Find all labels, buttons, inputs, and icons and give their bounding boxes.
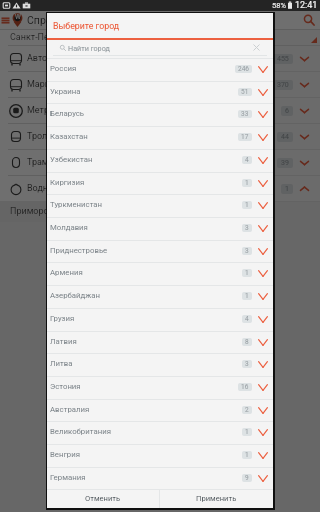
staticText: Маршрутка — [27, 79, 47, 90]
staticText: 44 — [281, 133, 289, 141]
staticText: Приднестровье — [50, 246, 108, 255]
staticText: Грузия — [50, 314, 75, 323]
staticText: Отменить — [85, 494, 121, 503]
staticText: Литва — [50, 359, 73, 368]
staticText: 1 — [245, 451, 249, 459]
button[interactable]: Отменить — [47, 490, 159, 508]
staticText: Узбекистан — [50, 155, 93, 164]
staticText: W — [15, 13, 21, 21]
staticText: 1 — [245, 201, 249, 209]
button[interactable]: 1 — [47, 176, 320, 201]
staticText: Казахстан — [50, 132, 88, 141]
staticText: 58% — [272, 1, 286, 10]
staticText: 1 — [245, 269, 249, 277]
button[interactable]: Водный — [0, 176, 47, 201]
button[interactable]: Великобритания — [47, 421, 273, 444]
button[interactable]: Маршрутка — [0, 72, 47, 97]
staticText: 370 — [277, 81, 289, 89]
button[interactable]: Туркменистан — [47, 194, 273, 217]
button[interactable]: Поиск — [303, 14, 315, 26]
staticText: 2 — [245, 406, 249, 414]
staticText: Украина — [50, 87, 81, 96]
staticText: Туркменистан — [50, 200, 103, 209]
staticText: 1 — [245, 292, 249, 300]
staticText: 33 — [241, 110, 249, 118]
button[interactable]: Венгрия — [47, 444, 273, 467]
button[interactable]: Киргизия — [47, 172, 273, 195]
button[interactable]: Молдавия — [47, 217, 273, 240]
button[interactable]: Беларусь — [47, 103, 273, 126]
button[interactable]: Автобус — [0, 46, 47, 71]
button[interactable]: 370 — [47, 72, 320, 97]
staticText: 8 — [245, 338, 249, 346]
staticText: 39 — [281, 159, 289, 167]
button[interactable]: Россия — [47, 58, 273, 81]
staticText: Выберите город — [53, 21, 120, 31]
button[interactable]: Очистить — [253, 44, 260, 51]
staticText: 246 — [238, 65, 249, 73]
button[interactable]: Литва — [47, 353, 273, 376]
staticText: Венгрия — [50, 450, 80, 459]
staticText: 4 — [245, 156, 249, 164]
staticText: Водный — [27, 183, 47, 194]
staticText: 16 — [241, 383, 249, 391]
staticText: Армения — [50, 268, 83, 277]
staticText: Россия — [50, 64, 77, 73]
staticText: Приморская — [10, 206, 47, 217]
button[interactable]: Троллейбус — [0, 124, 47, 149]
button[interactable]: 44 — [47, 124, 320, 149]
staticText: Австралия — [50, 405, 90, 414]
button[interactable]: Германия — [47, 467, 273, 490]
staticText: 1 — [245, 428, 249, 436]
button[interactable]: Приднестровье — [47, 240, 273, 263]
staticText: 4 — [245, 315, 249, 323]
button[interactable]: Латвия — [47, 331, 273, 354]
staticText: 3 — [245, 360, 249, 368]
staticText: 3 — [245, 224, 249, 232]
staticText: Латвия — [50, 337, 77, 346]
button[interactable]: Узбекистан — [47, 149, 273, 172]
staticText: 12:41 — [295, 0, 318, 11]
staticText: 1 — [245, 179, 249, 187]
staticText: Азербайджан — [50, 291, 101, 300]
staticText: Беларусь — [50, 109, 85, 118]
staticText: Великобритания — [50, 427, 111, 436]
staticText: Эстония — [50, 382, 81, 391]
button[interactable]: Трамвай — [0, 150, 47, 175]
button[interactable]: 455 — [47, 46, 320, 71]
staticText: Молдавия — [50, 223, 88, 232]
staticText: 51 — [241, 88, 249, 96]
staticText: Трамвай — [27, 157, 47, 168]
button[interactable]: Грузия — [47, 308, 273, 331]
staticText: Найти город — [68, 44, 110, 52]
staticText: Применить — [196, 494, 237, 503]
staticText: Справочник — [27, 14, 87, 26]
staticText: 17 — [241, 133, 249, 141]
staticText: Киргизия — [50, 178, 85, 187]
staticText: Троллейбус — [27, 131, 47, 142]
button[interactable]: Армения — [47, 262, 273, 285]
button[interactable]: Украина — [47, 81, 273, 104]
staticText: 6 — [285, 107, 289, 115]
staticText: 455 — [277, 55, 289, 63]
button[interactable]: Метро — [0, 98, 47, 123]
button[interactable]: 39 — [47, 150, 320, 175]
button[interactable]: 6 — [47, 98, 320, 123]
button[interactable]: Применить — [160, 490, 273, 508]
button[interactable]: Австралия — [47, 399, 273, 422]
staticText: 9 — [245, 474, 249, 482]
button[interactable]: Эстония — [47, 376, 273, 399]
button[interactable]: Азербайджан — [47, 285, 273, 308]
staticText: Санкт-Петербург — [10, 32, 47, 43]
staticText: 3 — [245, 247, 249, 255]
staticText: Метро — [27, 105, 47, 116]
button[interactable]: Казахстан — [47, 126, 273, 149]
staticText: Германия — [50, 473, 86, 482]
staticText: 1 — [285, 185, 289, 193]
staticText: Автобус — [27, 53, 47, 64]
